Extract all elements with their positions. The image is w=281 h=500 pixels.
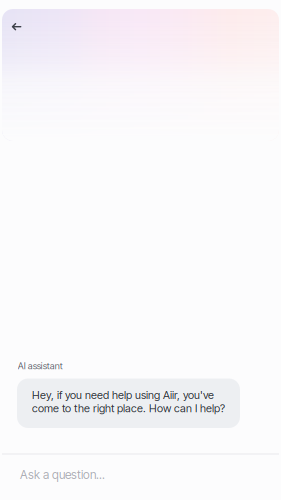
staticText: Hey, if you need help using Aiir, you've… — [32, 388, 225, 415]
button[interactable]: Ask a question... — [0, 454, 281, 500]
staticText: Ask a question... — [20, 467, 105, 482]
staticText: AI assistant — [18, 360, 63, 371]
button[interactable]: Back — [5, 15, 28, 38]
